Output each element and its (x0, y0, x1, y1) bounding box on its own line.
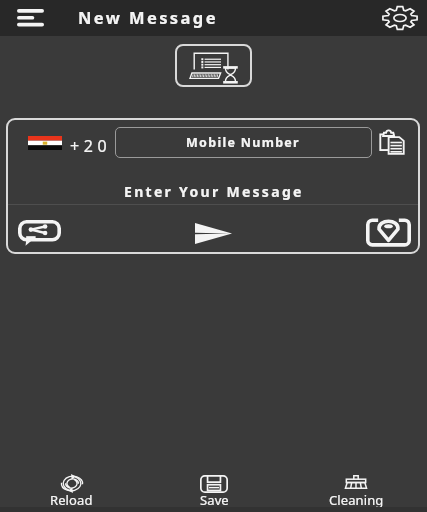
button[interactable]: Cleaning (285, 460, 427, 512)
button[interactable]: Mobile Number (115, 127, 372, 158)
staticText: Cleaning (329, 491, 384, 509)
button[interactable]: Reload (0, 460, 143, 512)
button[interactable]: Paste from clipboard (376, 126, 408, 158)
button[interactable]: Open navigation menu (12, 4, 48, 32)
staticText: Enter Your Message (124, 182, 304, 201)
staticText: Save (200, 491, 229, 509)
button[interactable]: Send (190, 217, 236, 249)
button[interactable]: Message preview (175, 44, 252, 87)
button[interactable]: Send location (363, 215, 413, 249)
button[interactable]: Share message (14, 216, 64, 250)
staticText: +20 (70, 135, 112, 157)
button[interactable]: Save (143, 460, 285, 512)
staticText: New Message (78, 6, 218, 28)
button[interactable]: Settings (381, 3, 419, 33)
staticText: Mobile Number (186, 134, 301, 151)
button[interactable]: Enter Your Message (6, 168, 420, 204)
staticText: Reload (50, 491, 93, 509)
